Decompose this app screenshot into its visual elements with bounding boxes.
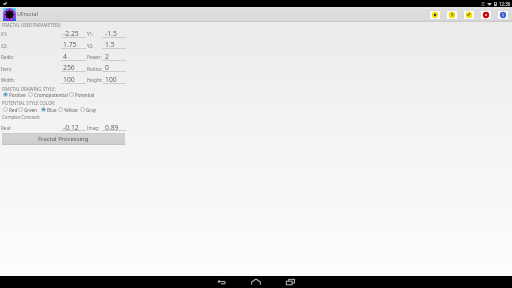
button[interactable]: Recents <box>284 276 296 288</box>
staticText: X1: <box>1 31 8 37</box>
staticText: 1.5 <box>105 40 115 49</box>
button[interactable]: Info <box>494 7 511 22</box>
staticText: Fractal Processing <box>38 135 89 143</box>
button[interactable]: Cromopotential <box>28 91 68 98</box>
staticText: Potential <box>75 92 95 98</box>
button[interactable]: Gray <box>80 106 97 113</box>
staticText: -2.25 <box>63 29 79 38</box>
staticText: Imag: <box>87 125 100 131</box>
staticText: FRACTAL USER PARAMETERS: <box>2 22 62 28</box>
button[interactable]: Zoom in <box>426 7 443 22</box>
staticText: Height: <box>87 77 103 83</box>
staticText: Y2: <box>87 43 94 49</box>
staticText: -0.12 <box>63 123 79 132</box>
staticText: UFractal <box>17 10 38 17</box>
staticText: Complex Constant <box>2 114 40 120</box>
button[interactable]: Back <box>216 276 228 288</box>
button[interactable]: Zoom out <box>443 7 460 22</box>
button[interactable]: Blue <box>41 106 57 113</box>
staticText: Rutina: <box>87 66 103 72</box>
staticText: Blue <box>47 107 57 113</box>
staticText: POTENTIAL STYLE COLOR: <box>2 100 56 106</box>
button[interactable]: Red <box>3 106 18 113</box>
staticText: X2: <box>1 43 8 49</box>
button[interactable]: Reset <box>460 7 477 22</box>
button[interactable]: Positive <box>3 91 26 98</box>
button[interactable]: Home <box>250 276 262 288</box>
staticText: Positive <box>9 92 26 98</box>
staticText: 2 <box>105 52 109 61</box>
button[interactable]: Stop <box>477 7 494 22</box>
staticText: FRACTAL DRAWING STYLE: <box>2 86 56 92</box>
button[interactable]: Green <box>18 106 38 113</box>
staticText: Cromopotential <box>34 92 68 98</box>
staticText: 100 <box>105 75 117 84</box>
staticText: 0.89 <box>105 123 119 132</box>
staticText: Radix: <box>1 54 14 60</box>
staticText: -1.5 <box>105 29 117 38</box>
staticText: 1.75 <box>63 40 77 49</box>
staticText: 256 <box>63 63 75 72</box>
staticText: Power: <box>87 54 102 60</box>
staticText: 0 <box>105 63 109 72</box>
button[interactable]: Yellow <box>58 106 78 113</box>
staticText: Green <box>24 107 38 113</box>
staticText: Yellow <box>64 107 78 113</box>
staticText: Red <box>9 107 18 113</box>
staticText: Y1: <box>87 31 94 37</box>
staticText: Width: <box>1 77 15 83</box>
staticText: Iters: <box>1 66 13 72</box>
button[interactable]: Potential <box>69 91 95 98</box>
staticText: Gray <box>86 107 97 113</box>
staticText: 12:36 <box>499 1 511 7</box>
staticText: Real: <box>1 125 12 131</box>
staticText: 100 <box>63 75 75 84</box>
button[interactable]: Fractal Processing <box>2 133 125 145</box>
staticText: 4 <box>63 52 67 61</box>
